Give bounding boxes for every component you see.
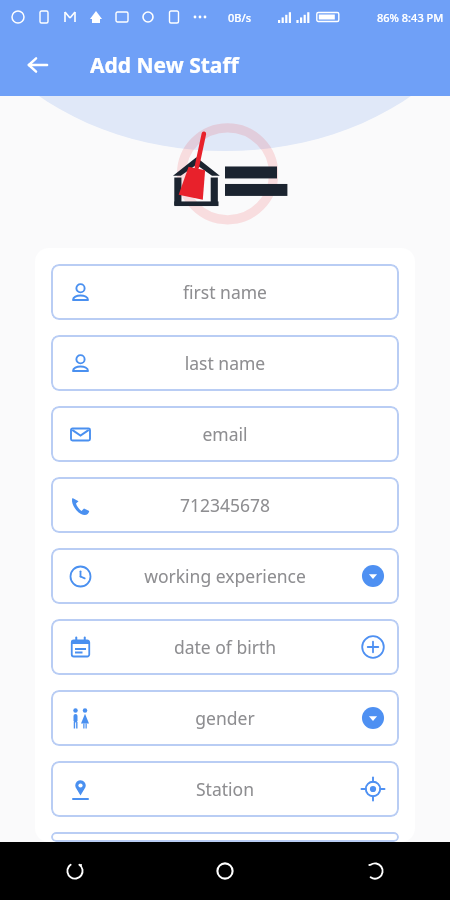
staticText: date of birth	[101, 635, 349, 659]
staticText: Add New Staff	[90, 51, 239, 80]
button[interactable]: first name	[51, 264, 399, 320]
staticText: last name	[101, 351, 349, 375]
button[interactable]: working experience	[51, 548, 399, 604]
staticText: first name	[101, 280, 349, 304]
button[interactable]: Recents	[47, 843, 103, 899]
button[interactable]: Back	[347, 843, 403, 899]
button[interactable]: Home	[197, 843, 253, 899]
button[interactable]: email	[51, 406, 399, 462]
button[interactable]: Back	[14, 41, 62, 89]
button[interactable]: date of birth	[51, 619, 399, 675]
button[interactable]	[51, 832, 399, 842]
staticText: 86% 8:43 PM	[377, 10, 444, 25]
staticText: Station	[101, 777, 349, 801]
button[interactable]: Station	[51, 761, 399, 817]
button[interactable]: 712345678	[51, 477, 399, 533]
staticText: email	[101, 422, 349, 446]
staticText: 712345678	[101, 493, 349, 517]
staticText: gender	[101, 706, 349, 730]
button[interactable]: gender	[51, 690, 399, 746]
staticText: 0B/s	[228, 10, 252, 25]
staticText: working experience	[101, 564, 349, 588]
button[interactable]: last name	[51, 335, 399, 391]
